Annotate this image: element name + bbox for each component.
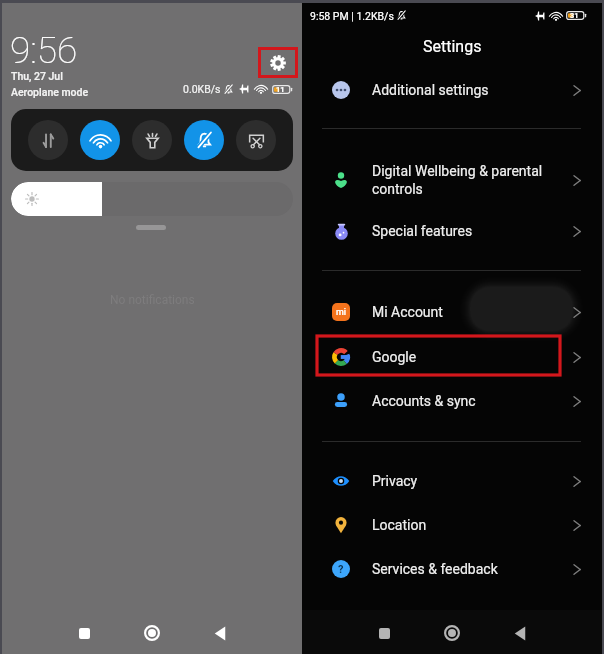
staticText: Additional settings xyxy=(372,82,489,98)
button[interactable]: Special features xyxy=(302,210,602,252)
staticText: Aeroplane mode xyxy=(11,86,89,98)
staticText: Google xyxy=(372,349,417,365)
staticText: 31 xyxy=(570,11,579,20)
staticText: Services & feedback xyxy=(372,561,498,577)
button[interactable]: Privacy xyxy=(302,460,602,502)
staticText: Special features xyxy=(372,223,473,239)
button[interactable]: Quick setting toggle xyxy=(236,120,276,160)
staticText: 9:56 xyxy=(10,29,78,67)
staticText: mi xyxy=(336,307,347,318)
staticText: Mi Account xyxy=(372,304,443,320)
staticText: Location xyxy=(372,517,427,533)
button[interactable]: mi xyxy=(302,291,602,333)
button[interactable]: Quick setting toggle xyxy=(28,120,68,160)
staticText: Settings xyxy=(423,37,482,56)
button[interactable]: Quick setting toggle xyxy=(184,120,224,160)
staticText: controls xyxy=(372,181,423,197)
button[interactable]: Quick setting toggle xyxy=(132,120,172,160)
staticText: ? xyxy=(338,563,344,576)
button[interactable]: Back xyxy=(201,614,239,652)
button[interactable]: Recents xyxy=(365,614,403,652)
staticText: 9:58 PM | 1.2KB/s xyxy=(310,10,394,22)
button[interactable]: Brightness xyxy=(11,182,293,216)
button[interactable]: Home xyxy=(433,614,471,652)
staticText: Digital Wellbeing & parental xyxy=(372,163,543,179)
staticText: Thu, 27 Jul xyxy=(11,70,63,82)
button[interactable]: Back xyxy=(501,614,539,652)
button[interactable]: Recents xyxy=(65,614,103,652)
staticText: No notifications xyxy=(110,293,195,307)
staticText: Privacy xyxy=(372,473,418,489)
button[interactable]: Location xyxy=(302,504,602,546)
button[interactable]: Additional settings xyxy=(302,69,602,111)
staticText: 11 xyxy=(276,85,285,94)
button[interactable]: ? xyxy=(302,548,602,590)
button[interactable]: Digital Wellbeing & parental xyxy=(302,156,602,204)
button[interactable]: Quick setting toggle xyxy=(80,120,120,160)
staticText: Accounts & sync xyxy=(372,393,476,409)
staticText: 0.0KB/s xyxy=(183,83,221,95)
button[interactable]: Accounts & sync xyxy=(302,380,602,422)
button[interactable]: Home xyxy=(133,614,171,652)
button[interactable]: Google xyxy=(302,336,602,378)
button[interactable]: Settings xyxy=(261,50,295,75)
